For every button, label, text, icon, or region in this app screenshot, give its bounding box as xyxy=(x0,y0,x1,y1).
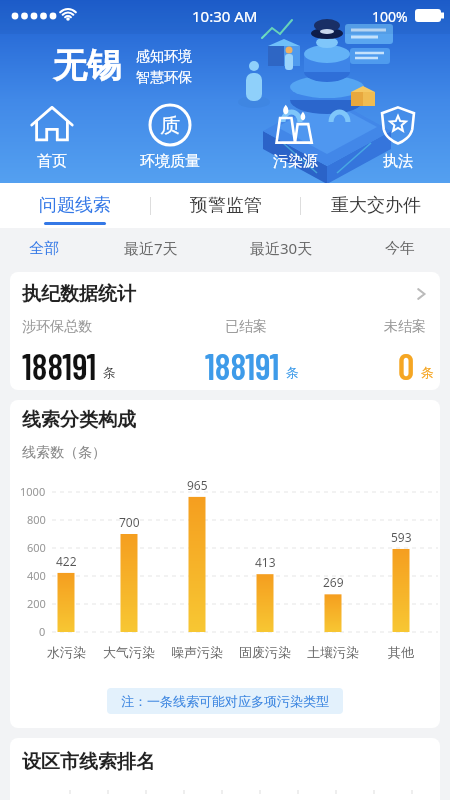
staticText: 无锡 xyxy=(53,44,121,87)
staticText: 800 xyxy=(27,512,46,527)
staticText: 感知环境 xyxy=(136,48,192,66)
staticText: 未结案 xyxy=(384,318,426,336)
staticText: 593 xyxy=(391,529,412,545)
staticText: 400 xyxy=(27,568,46,583)
staticText: 水污染 xyxy=(47,644,86,660)
staticText: 0 xyxy=(39,624,46,639)
button[interactable]: 执法 xyxy=(338,102,450,171)
staticText: 269 xyxy=(323,574,344,590)
button[interactable]: 重大交办件 xyxy=(301,183,450,228)
staticText: 今年 xyxy=(385,239,415,258)
staticText: 188191 xyxy=(22,344,97,387)
button[interactable]: 问题线索 xyxy=(0,183,150,228)
staticText: 大气污染 xyxy=(103,644,155,660)
button[interactable]: 质 xyxy=(110,102,230,171)
staticText: 965 xyxy=(187,477,208,493)
staticText: 土壤污染 xyxy=(307,644,359,660)
staticText: 0 xyxy=(398,344,415,387)
staticText: 污染源 xyxy=(273,152,318,171)
staticText: 条 xyxy=(103,364,116,380)
staticText: 700 xyxy=(119,514,140,530)
staticText: 线索数（条） xyxy=(22,444,106,462)
staticText: 质 xyxy=(160,113,180,138)
button[interactable]: 首页 xyxy=(0,102,112,171)
staticText: 422 xyxy=(56,553,77,569)
staticText: 设区市线索排名 xyxy=(22,750,155,774)
staticText: 10:30 AM xyxy=(192,6,258,26)
staticText: 问题线索 xyxy=(39,194,111,217)
staticText: 最近30天 xyxy=(250,238,313,258)
staticText: 最近7天 xyxy=(124,238,178,258)
staticText: 条 xyxy=(421,364,434,380)
staticText: 已结案 xyxy=(225,318,267,336)
staticText: 重大交办件 xyxy=(331,194,421,217)
button[interactable]: 今年 xyxy=(385,228,415,268)
staticText: 涉环保总数 xyxy=(22,318,92,336)
staticText: 1000 xyxy=(20,484,46,499)
staticText: 注：一条线索可能对应多项污染类型 xyxy=(121,693,329,709)
staticText: 其他 xyxy=(388,644,414,660)
staticText: 首页 xyxy=(37,152,67,171)
staticText: 环境质量 xyxy=(140,152,200,171)
button[interactable]: 预警监管 xyxy=(151,183,300,228)
staticText: 413 xyxy=(255,554,276,570)
staticText: 固废污染 xyxy=(239,644,291,660)
staticText: 执纪数据统计 xyxy=(22,282,136,306)
staticText: 200 xyxy=(27,596,46,611)
staticText: 智慧环保 xyxy=(136,69,192,87)
staticText: 100% xyxy=(372,7,408,26)
staticText: 条 xyxy=(286,364,299,380)
staticText: 全部 xyxy=(29,239,59,258)
staticText: 执法 xyxy=(383,152,413,171)
staticText: 线索分类构成 xyxy=(22,408,136,432)
staticText: 188191 xyxy=(205,344,280,387)
staticText: 预警监管 xyxy=(190,194,262,217)
staticText: 噪声污染 xyxy=(171,644,223,660)
button[interactable]: 最近7天 xyxy=(124,228,178,268)
button[interactable]: 最近30天 xyxy=(250,228,313,268)
button[interactable]: 全部 xyxy=(29,228,59,268)
button[interactable]: 执纪数据统计 xyxy=(22,282,428,306)
button[interactable]: 污染源 xyxy=(235,102,355,171)
staticText: 600 xyxy=(27,540,46,555)
